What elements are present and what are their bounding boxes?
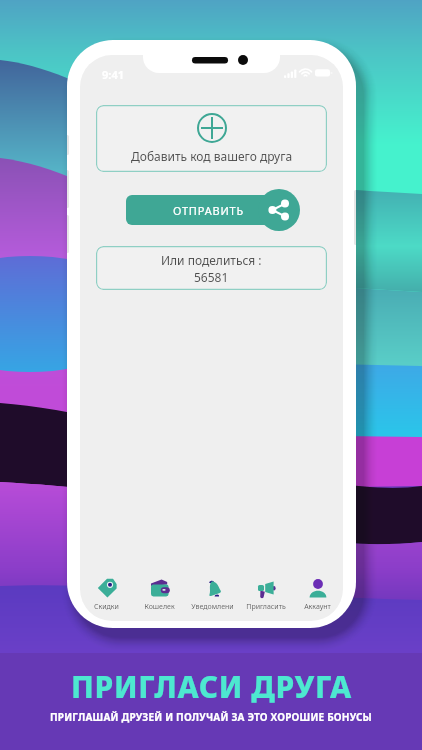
button[interactable]: Добавить код вашего друга [96, 105, 327, 172]
button[interactable]: Поделиться [258, 189, 300, 231]
staticText: Кошелек [144, 602, 175, 612]
button[interactable]: Аккаунт [292, 574, 343, 618]
staticText: ПРИГЛАШАЙ ДРУЗЕЙ И ПОЛУЧАЙ ЗА ЭТО ХОРОШИ… [50, 710, 373, 724]
staticText: Скидки [94, 602, 119, 612]
staticText: ОТПРАВИТЬ [173, 203, 244, 218]
button[interactable]: Уведомлени [186, 574, 239, 618]
staticText: Пригласить [246, 602, 286, 612]
staticText: ПРИГЛАСИ ДРУГА [71, 666, 352, 707]
staticText: Аккаунт [304, 602, 331, 612]
staticText: Добавить код вашего друга [131, 148, 293, 164]
staticText: Уведомлени [191, 602, 234, 612]
staticText: 9:41 [102, 67, 124, 82]
button[interactable]: Или поделиться : [96, 246, 327, 290]
button[interactable]: Пригласить [239, 574, 292, 618]
button[interactable]: Кошелек [133, 574, 186, 618]
staticText: 56581 [194, 269, 229, 285]
button[interactable]: Скидки [80, 574, 133, 618]
staticText: Или поделиться : [161, 252, 262, 268]
button[interactable]: ОТПРАВИТЬ [126, 195, 290, 225]
